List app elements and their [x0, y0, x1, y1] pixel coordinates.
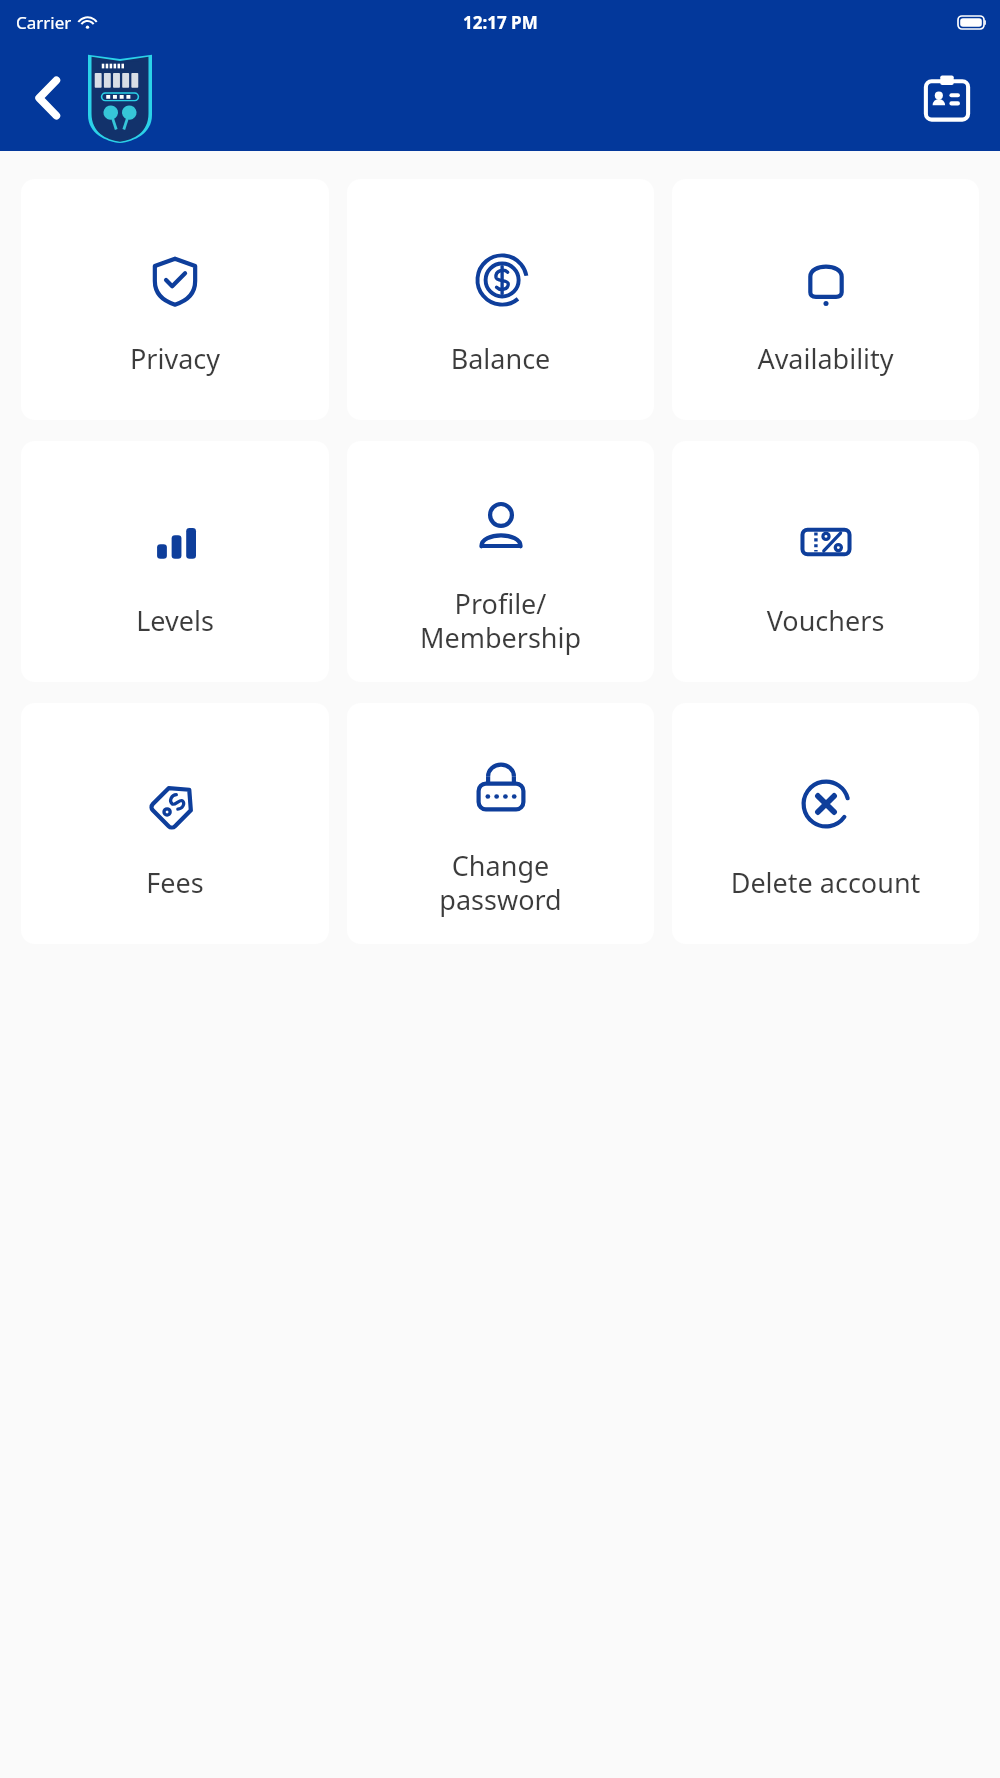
staticText: Fees: [21, 864, 329, 901]
button[interactable]: Delete account: [672, 703, 979, 944]
button[interactable]: Fees: [21, 703, 329, 944]
button[interactable]: Levels: [21, 441, 329, 682]
staticText: Carrier: [16, 11, 72, 34]
staticText: Availability: [672, 340, 979, 377]
button[interactable]: Manila Padel Club: [88, 51, 152, 145]
button[interactable]: Member card: [916, 67, 978, 129]
staticText: Delete account: [672, 864, 979, 901]
button[interactable]: Profile/ Membership: [347, 441, 654, 682]
staticText: Profile/ Membership: [347, 585, 654, 656]
button[interactable]: Availability: [672, 179, 979, 420]
staticText: 12:17 PM: [463, 11, 538, 34]
staticText: Privacy: [21, 340, 329, 377]
staticText: Vouchers: [672, 602, 979, 639]
button[interactable]: Privacy: [21, 179, 329, 420]
button[interactable]: Vouchers: [672, 441, 979, 682]
staticText: Balance: [347, 340, 654, 377]
staticText: Levels: [21, 602, 329, 639]
button[interactable]: Change password: [347, 703, 654, 944]
staticText: Change password: [347, 847, 654, 918]
button[interactable]: Back: [22, 72, 74, 124]
button[interactable]: Balance: [347, 179, 654, 420]
